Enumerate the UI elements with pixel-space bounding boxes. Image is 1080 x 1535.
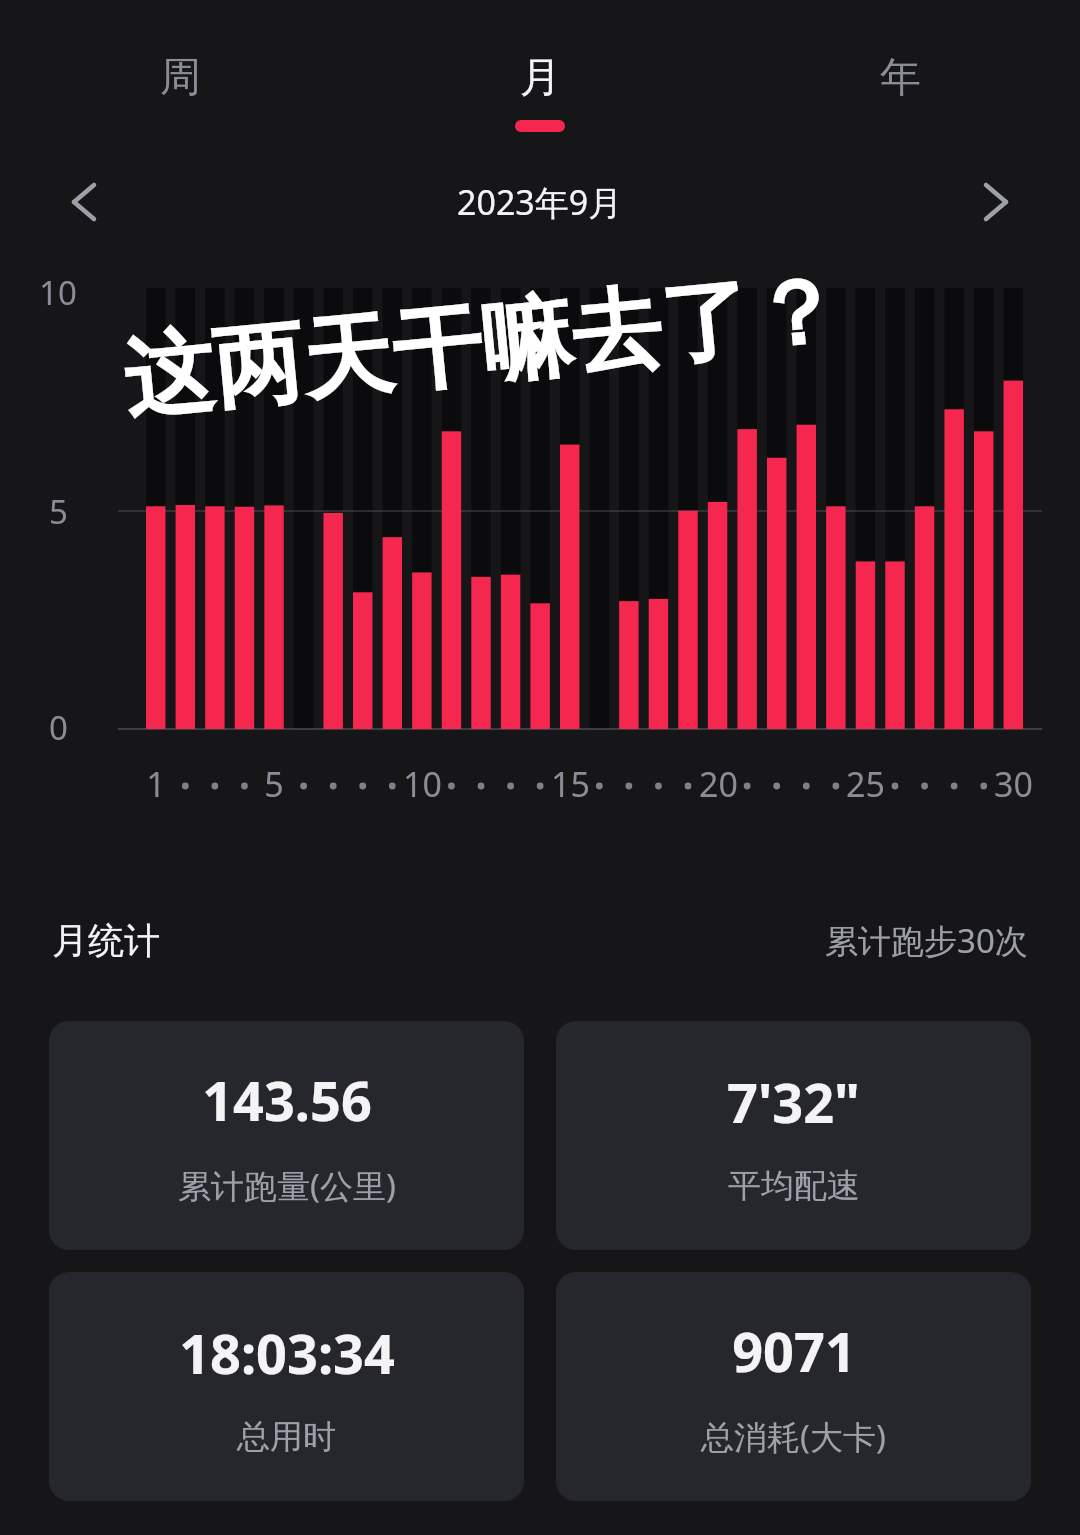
staticText: 0 (49, 705, 68, 750)
staticText: 这两天干嘛去了？ (118, 254, 846, 435)
staticText: 10 (39, 270, 77, 315)
staticText: 5 (49, 489, 68, 534)
staticText: 7'32" (727, 1065, 860, 1139)
staticText: 5 (264, 761, 284, 807)
button[interactable]: 月 (360, 0, 720, 150)
staticText: 周 (160, 52, 201, 104)
button[interactable]: Previous month (0, 162, 168, 242)
button[interactable]: 7'32" (556, 1021, 1031, 1250)
staticText: 10 (403, 761, 442, 807)
button[interactable]: 年 (720, 0, 1080, 150)
button[interactable]: 周 (0, 0, 360, 150)
staticText: 15 (551, 761, 590, 807)
staticText: 25 (846, 761, 885, 807)
button[interactable]: 18:03:34 (49, 1272, 524, 1501)
button[interactable]: Next month (912, 162, 1080, 242)
button[interactable]: 9071 (556, 1272, 1031, 1501)
staticText: 平均配速 (728, 1165, 860, 1207)
button[interactable]: 143.56 (49, 1021, 524, 1250)
staticText: 143.56 (202, 1063, 372, 1137)
staticText: 20 (699, 761, 738, 807)
staticText: 总用时 (237, 1416, 336, 1458)
staticText: 累计跑量(公里) (178, 1163, 396, 1208)
staticText: 2023年9月 (457, 179, 623, 225)
staticText: 月 (520, 52, 561, 104)
staticText: 年 (880, 52, 921, 104)
staticText: 9071 (732, 1314, 856, 1388)
staticText: 月统计 (52, 918, 160, 963)
staticText: 30 (994, 761, 1033, 807)
staticText: 1 (146, 761, 166, 807)
staticText: 18:03:34 (179, 1316, 395, 1390)
staticText: 总消耗(大卡) (701, 1414, 886, 1459)
staticText: 累计跑步30次 (825, 918, 1028, 963)
